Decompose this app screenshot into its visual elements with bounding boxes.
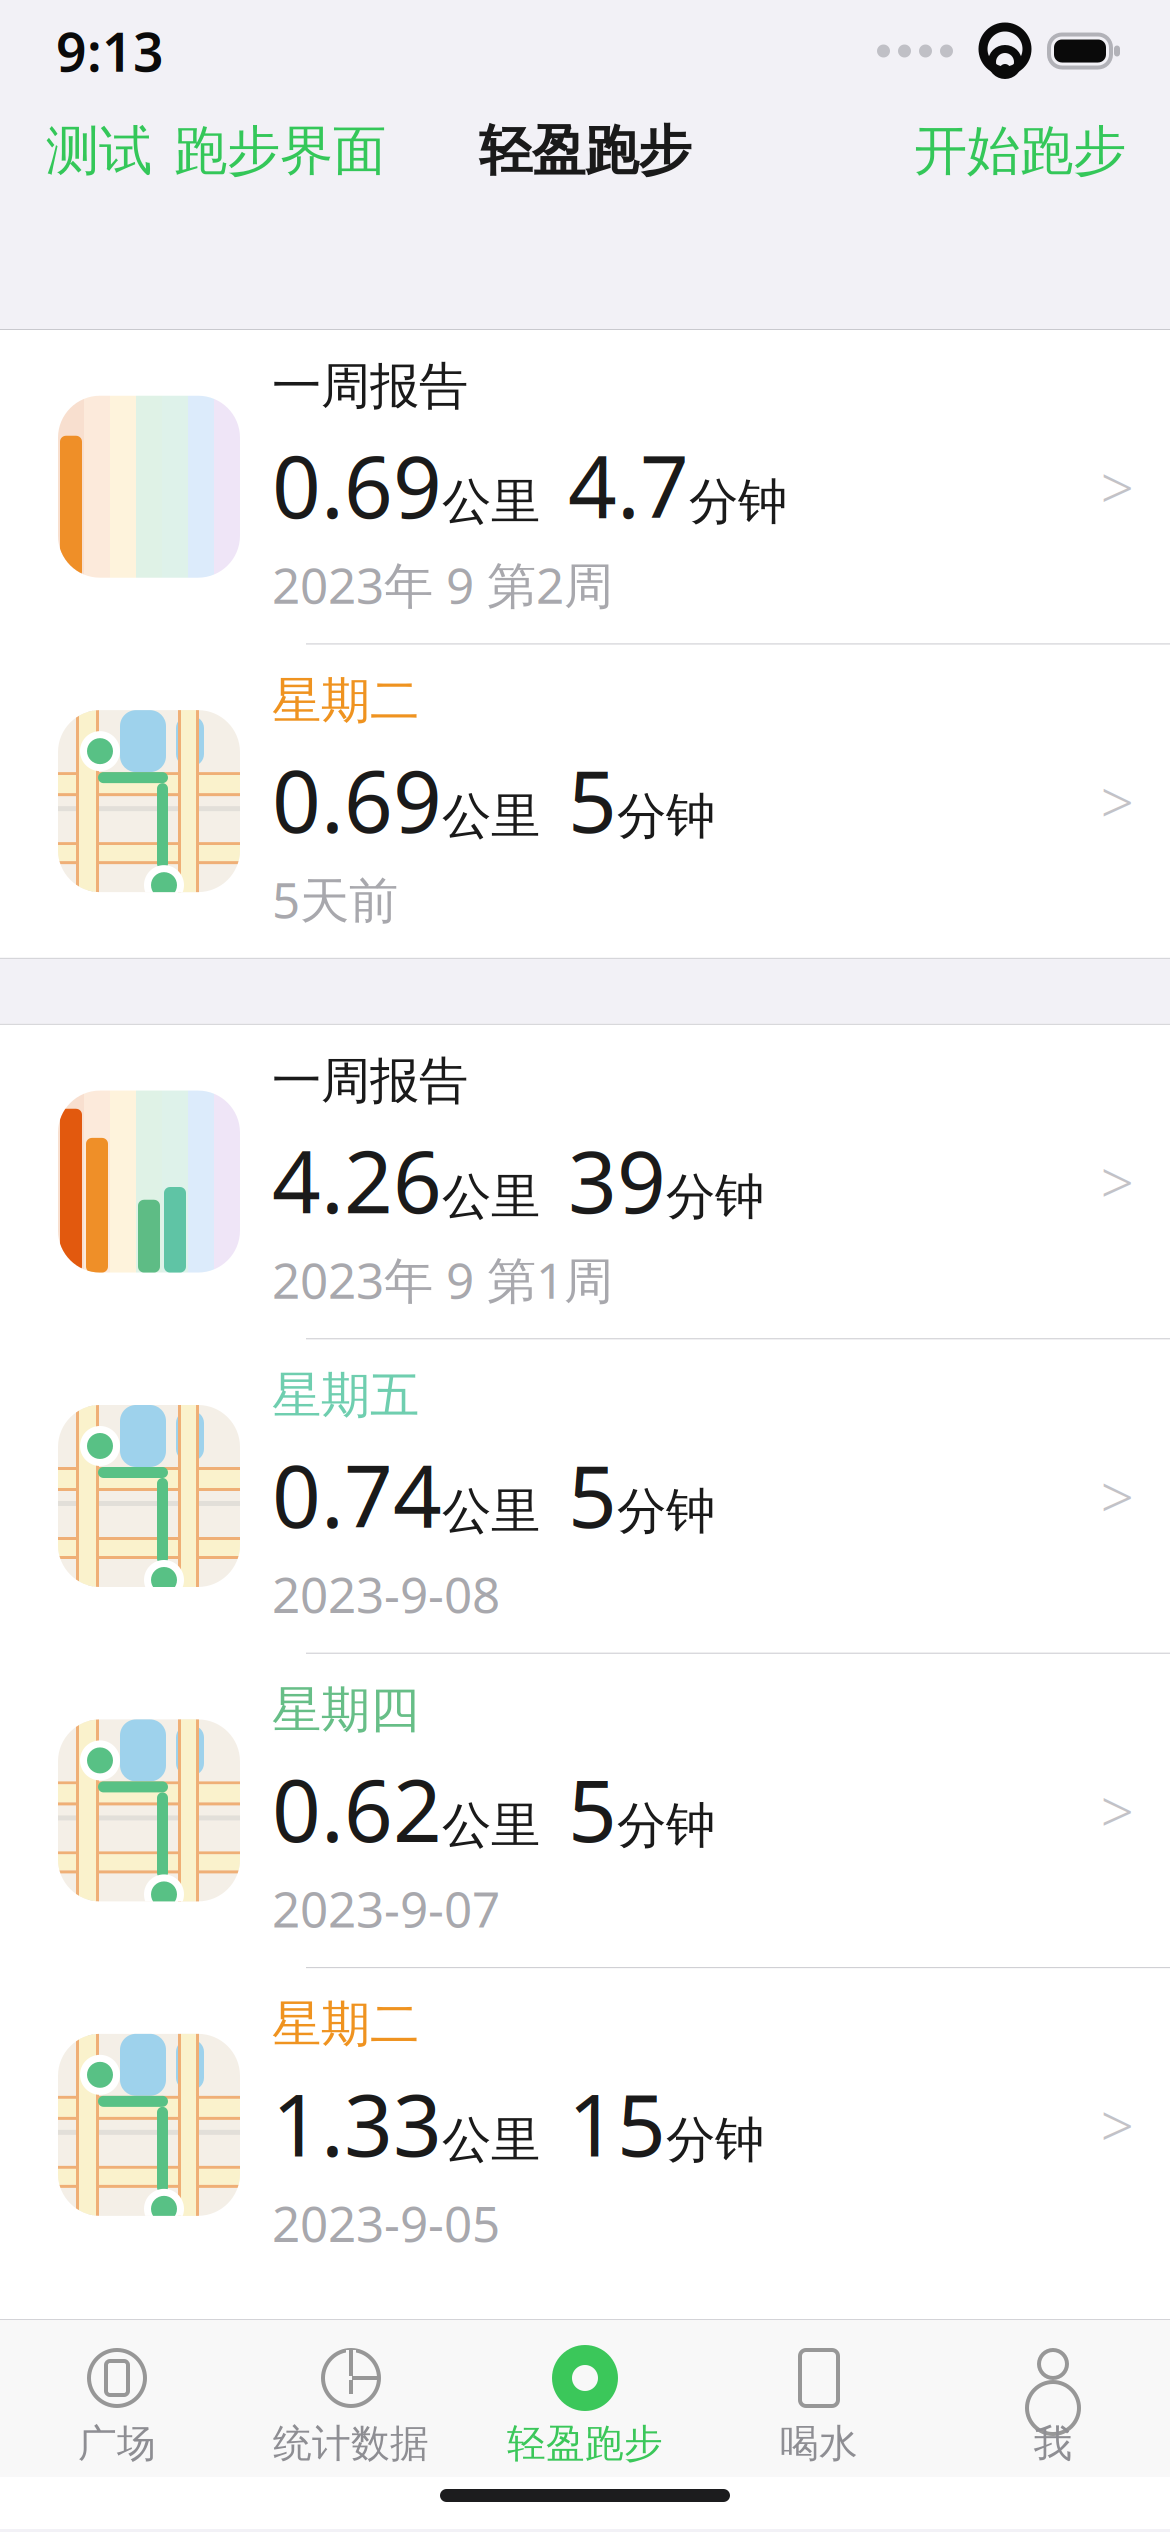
button[interactable]: 跑步界面: [152, 108, 386, 194]
staticText: 9:13: [56, 16, 164, 86]
staticText: 星期五: [272, 1365, 419, 1426]
staticText: 0.62: [272, 1752, 442, 1866]
button[interactable]: 一周报告: [0, 1025, 1170, 1338]
button[interactable]: 星期二: [0, 1967, 1170, 2281]
staticText: 星期二: [272, 670, 419, 731]
staticText: 4.26: [272, 1123, 442, 1237]
staticText: 公里: [442, 786, 540, 847]
staticText: 分钟: [617, 1481, 715, 1541]
button[interactable]: 喝水: [702, 2340, 936, 2471]
staticText: 0.69: [272, 743, 442, 856]
staticText: 轻盈跑步: [507, 2420, 663, 2467]
staticText: 分钟: [666, 2110, 764, 2170]
button[interactable]: 统计数据: [234, 2340, 468, 2471]
staticText: 公里: [442, 1166, 540, 1227]
staticText: 2023-9-07: [272, 1876, 500, 1941]
staticText: 5天前: [272, 866, 398, 932]
staticText: 5: [568, 1438, 617, 1551]
staticText: 分钟: [689, 472, 787, 532]
staticText: 测试: [46, 118, 152, 184]
staticText: 公里: [442, 472, 540, 532]
staticText: 跑步界面: [174, 118, 386, 184]
staticText: 2023年 9 第2周: [272, 552, 613, 617]
staticText: 分钟: [617, 1795, 715, 1856]
staticText: 开始跑步: [914, 118, 1126, 184]
staticText: 1.33: [272, 2067, 442, 2180]
button[interactable]: 我: [936, 2340, 1170, 2471]
staticText: 5: [568, 743, 617, 856]
staticText: 公里: [442, 2110, 540, 2170]
button[interactable]: 测试: [46, 108, 152, 194]
staticText: 分钟: [617, 786, 715, 847]
staticText: 一周报告: [272, 356, 468, 417]
staticText: >: [1100, 1771, 1133, 1849]
button[interactable]: 星期五: [0, 1338, 1170, 1653]
staticText: 2023-9-08: [272, 1561, 500, 1627]
staticText: 0.74: [272, 1438, 442, 1551]
staticText: 15: [568, 2067, 666, 2180]
staticText: 轻盈跑步: [479, 118, 691, 184]
staticText: >: [1100, 2086, 1133, 2164]
button[interactable]: 星期二: [0, 643, 1170, 958]
staticText: 5: [568, 1752, 617, 1866]
staticText: >: [1100, 448, 1133, 526]
staticText: 2023-9-05: [272, 2190, 500, 2255]
staticText: 一周报告: [272, 1051, 468, 1111]
staticText: 我: [1033, 2420, 1072, 2467]
button[interactable]: 一周报告: [0, 330, 1170, 643]
staticText: 4.7: [568, 429, 689, 542]
staticText: >: [1100, 1457, 1133, 1535]
staticText: 星期四: [272, 1680, 419, 1740]
staticText: 公里: [442, 1481, 540, 1541]
staticText: 分钟: [666, 1166, 764, 1227]
staticText: 39: [568, 1123, 666, 1237]
staticText: 2023年 9 第1周: [272, 1247, 613, 1312]
button[interactable]: 开始跑步: [914, 108, 1126, 194]
staticText: 公里: [442, 1795, 540, 1856]
staticText: 喝水: [780, 2420, 858, 2467]
staticText: >: [1100, 1143, 1133, 1220]
button[interactable]: 星期四: [0, 1653, 1170, 1967]
staticText: 统计数据: [273, 2420, 429, 2467]
staticText: 星期二: [272, 1994, 419, 2055]
staticText: 0.69: [272, 429, 442, 542]
button[interactable]: 广场: [0, 2340, 234, 2471]
button[interactable]: 轻盈跑步: [468, 2340, 702, 2471]
staticText: 广场: [78, 2420, 156, 2467]
staticText: >: [1100, 762, 1133, 840]
